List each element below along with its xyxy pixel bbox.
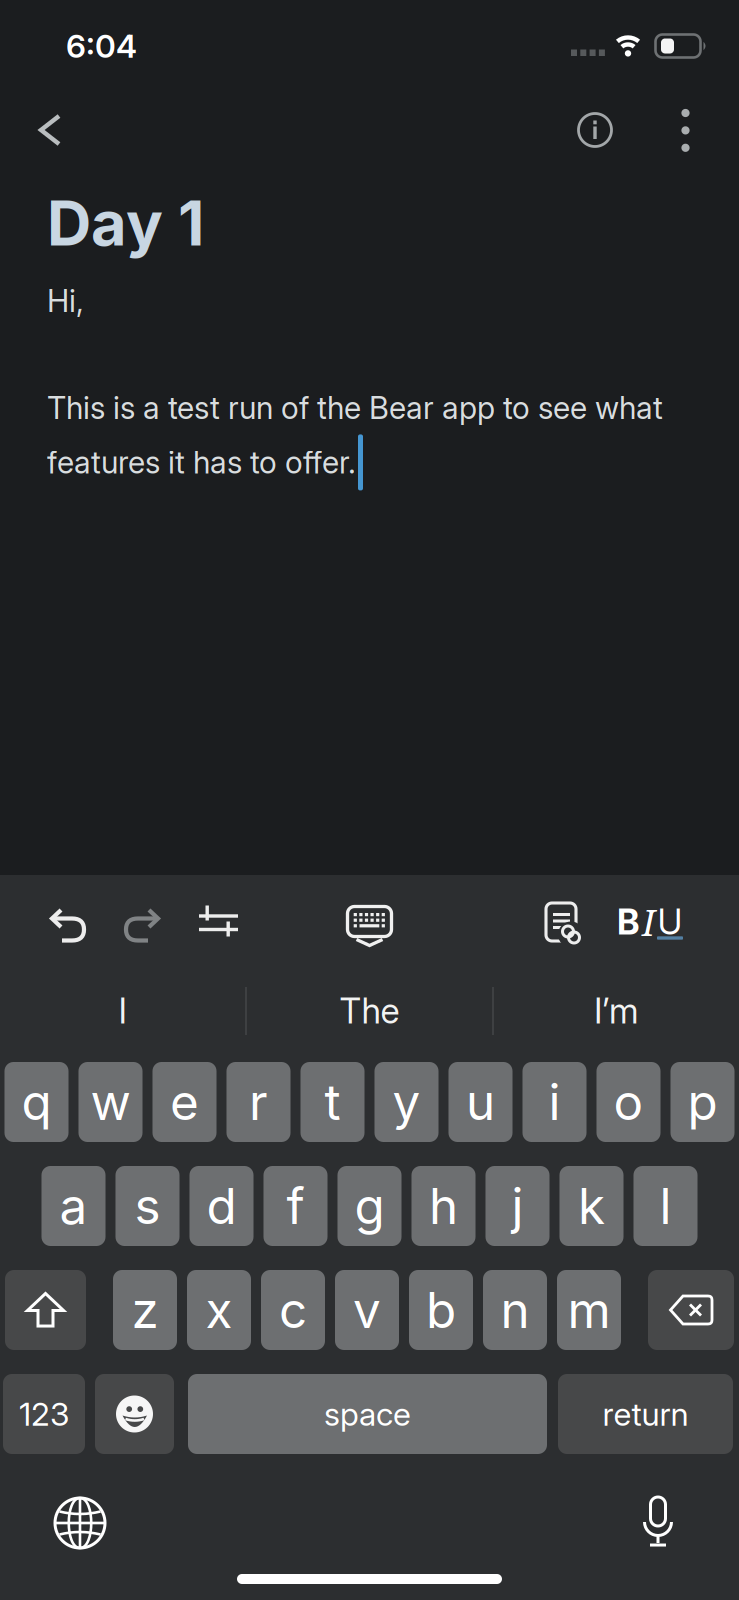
button[interactable]: Undo	[0, 875, 124, 985]
staticText: This is a test run of the Bear app to se…	[47, 389, 663, 426]
button[interactable]: I	[0, 985, 245, 1037]
staticText: d	[206, 1176, 236, 1236]
button[interactable]: i	[522, 1062, 586, 1142]
staticText: features it has to offer.	[47, 444, 356, 481]
staticText: I’m	[594, 990, 639, 1032]
button[interactable]: c	[261, 1270, 325, 1350]
button[interactable]: n	[483, 1270, 547, 1350]
staticText: z	[131, 1280, 158, 1340]
button[interactable]: o	[596, 1062, 660, 1142]
staticText: w	[90, 1072, 130, 1132]
staticText: q	[21, 1072, 51, 1132]
button[interactable]: Redo	[124, 875, 199, 985]
staticText: h	[429, 1176, 458, 1236]
staticText: e	[170, 1072, 199, 1132]
button[interactable]: r	[226, 1062, 290, 1142]
button[interactable]: x	[187, 1270, 251, 1350]
button[interactable]: Markdown shortcuts	[199, 875, 238, 985]
staticText: B	[617, 901, 640, 943]
button[interactable]: k	[559, 1166, 623, 1246]
button[interactable]: p	[670, 1062, 734, 1142]
button[interactable]: s	[115, 1166, 179, 1246]
button[interactable]: j	[485, 1166, 549, 1246]
button[interactable]: I’m	[494, 985, 739, 1037]
button[interactable]: Shift	[5, 1270, 86, 1350]
button[interactable]: e	[152, 1062, 216, 1142]
button[interactable]: space	[174, 1374, 547, 1454]
button[interactable]: Hide keyboard	[346, 909, 392, 950]
staticText: x	[205, 1280, 232, 1340]
button[interactable]: b	[409, 1270, 473, 1350]
button[interactable]: z	[113, 1270, 177, 1350]
staticText: U	[657, 901, 682, 943]
button[interactable]: Numbers	[3, 1374, 85, 1454]
button[interactable]: Info	[562, 92, 661, 168]
button[interactable]: Back	[0, 92, 86, 168]
staticText: return	[602, 1395, 688, 1433]
button[interactable]: h	[411, 1166, 475, 1246]
button[interactable]: d	[189, 1166, 253, 1246]
staticText: i	[548, 1072, 560, 1132]
staticText: o	[613, 1072, 643, 1132]
button[interactable]: w	[78, 1062, 142, 1142]
staticText: u	[466, 1072, 495, 1132]
staticText: n	[500, 1280, 529, 1340]
staticText: s	[134, 1176, 160, 1236]
staticText: 123	[19, 1395, 69, 1433]
staticText: Day 1	[47, 186, 204, 260]
staticText: b	[426, 1280, 456, 1340]
staticText: t	[324, 1072, 340, 1132]
button[interactable]: m	[557, 1270, 621, 1350]
staticText: c	[279, 1280, 307, 1340]
button[interactable]: The	[247, 985, 492, 1037]
button[interactable]: Text style	[617, 875, 739, 985]
button[interactable]: l	[633, 1166, 697, 1246]
staticText: g	[354, 1176, 384, 1236]
staticText: a	[59, 1176, 87, 1236]
button[interactable]: u	[448, 1062, 512, 1142]
button[interactable]: Attach note link	[546, 875, 617, 985]
staticText: I	[642, 897, 655, 946]
staticText: y	[392, 1072, 420, 1132]
staticText: j	[511, 1176, 523, 1236]
button[interactable]: More	[661, 92, 739, 168]
button[interactable]: Next keyboard	[0, 1497, 106, 1549]
staticText: f	[286, 1176, 304, 1236]
button[interactable]: Dictation	[642, 1497, 739, 1549]
button[interactable]: return	[547, 1374, 733, 1454]
button[interactable]: f	[263, 1166, 327, 1246]
staticText: v	[353, 1280, 381, 1340]
button[interactable]: a	[41, 1166, 105, 1246]
button[interactable]: Emoji	[85, 1374, 174, 1454]
button[interactable]: g	[337, 1166, 401, 1246]
button[interactable]: Delete	[648, 1270, 734, 1350]
staticText: r	[249, 1072, 268, 1132]
staticText: 6:04	[66, 27, 137, 65]
staticText: space	[324, 1395, 411, 1433]
button[interactable]: t	[300, 1062, 364, 1142]
staticText: p	[687, 1072, 717, 1132]
button[interactable]: q	[4, 1062, 68, 1142]
staticText: l	[659, 1176, 671, 1236]
staticText: Hi,	[47, 282, 84, 319]
button[interactable]: v	[335, 1270, 399, 1350]
staticText: m	[567, 1280, 610, 1340]
staticText: k	[578, 1176, 605, 1236]
staticText: The	[339, 990, 399, 1032]
button[interactable]: y	[374, 1062, 438, 1142]
staticText: I	[118, 990, 126, 1032]
